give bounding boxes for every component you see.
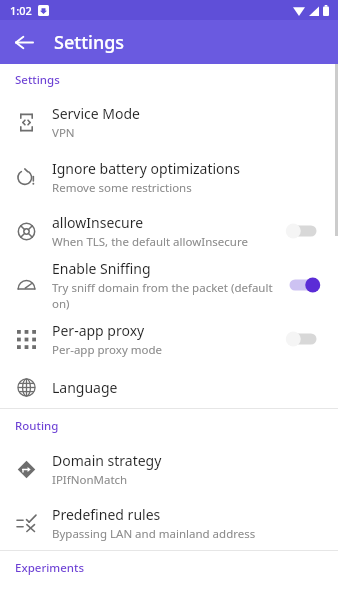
button[interactable]: Ignore battery optimizations xyxy=(0,150,338,204)
button[interactable]: Enabled xyxy=(280,270,326,300)
staticText: VPN xyxy=(52,125,75,141)
staticText: IPIfNonMatch xyxy=(52,472,128,488)
staticText: Routing xyxy=(15,418,59,434)
staticText: Predefined rules xyxy=(52,505,161,524)
button[interactable]: Service Mode xyxy=(0,95,338,150)
staticText: Per-app proxy mode xyxy=(52,342,163,358)
staticText: Settings xyxy=(15,72,60,88)
button[interactable]: Domain strategy xyxy=(0,442,338,496)
button[interactable]: Back xyxy=(5,23,43,61)
staticText: allowInsecure xyxy=(52,213,144,232)
staticText: Domain strategy xyxy=(52,451,162,470)
staticText: Bypassing LAN and mainland address xyxy=(52,526,256,542)
staticText: Experiments xyxy=(15,560,85,576)
staticText: Enable Sniffing xyxy=(52,259,151,278)
button[interactable]: Disabled xyxy=(280,216,326,246)
button[interactable]: Language xyxy=(0,366,338,408)
button[interactable]: allowInsecure xyxy=(0,204,338,258)
staticText: Per-app proxy xyxy=(52,321,145,340)
button[interactable]: Disabled xyxy=(280,324,326,354)
staticText: Settings xyxy=(54,30,125,55)
button[interactable]: Enable Sniffing xyxy=(0,258,338,312)
staticText: Ignore battery optimizations xyxy=(52,159,240,178)
staticText: When TLS, the default allowInsecure xyxy=(52,234,248,250)
staticText: 1:02 xyxy=(10,3,32,18)
staticText: Remove some restrictions xyxy=(52,180,192,196)
button[interactable]: Per-app proxy xyxy=(0,312,338,366)
staticText: Try sniff domain from the packet (defaul… xyxy=(52,280,280,312)
button[interactable]: Predefined rules xyxy=(0,496,338,550)
staticText: Service Mode xyxy=(52,104,141,123)
staticText: Language xyxy=(52,378,118,397)
